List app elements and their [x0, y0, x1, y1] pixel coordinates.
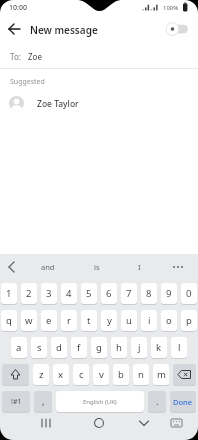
staticText: 8	[146, 287, 152, 300]
staticText: j	[138, 341, 141, 354]
staticText: d	[56, 341, 62, 354]
staticText: 10:00	[9, 3, 27, 13]
button[interactable]	[164, 254, 192, 280]
staticText: t	[87, 314, 91, 327]
staticText: x	[58, 368, 64, 381]
button[interactable]: ,	[34, 391, 52, 413]
button[interactable]: To:	[0, 44, 198, 68]
button[interactable]: l	[171, 337, 187, 359]
button[interactable]: 1	[1, 283, 17, 305]
button[interactable]: I	[121, 254, 157, 280]
staticText: a	[16, 341, 22, 354]
button[interactable]: 2	[21, 283, 37, 305]
staticText: Done	[173, 397, 193, 407]
button[interactable]: 8	[141, 283, 157, 305]
button[interactable]: p	[181, 310, 197, 332]
button[interactable]: x	[53, 364, 69, 386]
staticText: w	[25, 314, 33, 327]
button[interactable]	[173, 364, 196, 386]
staticText: 9	[166, 287, 172, 300]
button[interactable]: Zoe Taylor	[0, 93, 198, 114]
staticText: and	[41, 262, 55, 272]
button[interactable]: !#1	[2, 391, 30, 413]
staticText: n	[138, 368, 144, 381]
button[interactable]: 5	[81, 283, 97, 305]
button[interactable]	[2, 257, 22, 277]
button[interactable]	[4, 19, 24, 39]
button[interactable]: w	[21, 310, 37, 332]
button[interactable]: d	[51, 337, 67, 359]
button[interactable]	[36, 414, 56, 432]
button[interactable]: r	[61, 310, 77, 332]
staticText: To:	[10, 51, 21, 62]
staticText: f	[77, 341, 81, 354]
staticText: 6	[106, 287, 112, 300]
button[interactable]: 7	[121, 283, 137, 305]
button[interactable]: q	[1, 310, 17, 332]
staticText: k	[156, 341, 162, 354]
staticText: u	[126, 314, 132, 327]
button[interactable]: f	[71, 337, 87, 359]
button[interactable]: t	[81, 310, 97, 332]
staticText: l	[178, 341, 181, 354]
staticText: e	[46, 314, 52, 327]
staticText: Zoe	[28, 51, 42, 62]
staticText: English (UK)	[83, 398, 117, 406]
staticText: y	[107, 314, 112, 327]
button[interactable]: j	[131, 337, 147, 359]
staticText: ,	[42, 395, 45, 408]
staticText: 3	[46, 287, 52, 300]
button[interactable]: 4	[61, 283, 77, 305]
staticText: 2	[26, 287, 32, 300]
button[interactable]: 3	[41, 283, 57, 305]
staticText: p	[186, 314, 192, 327]
button[interactable]	[163, 21, 191, 37]
button[interactable]: y	[101, 310, 117, 332]
staticText: .	[156, 395, 159, 408]
button[interactable]: v	[93, 364, 109, 386]
button[interactable]: u	[121, 310, 137, 332]
staticText: 7	[126, 287, 132, 300]
button[interactable]: is	[79, 254, 115, 280]
button[interactable]: b	[113, 364, 129, 386]
button[interactable]: 6	[101, 283, 117, 305]
button[interactable]: a	[11, 337, 27, 359]
button[interactable]	[134, 414, 154, 432]
staticText: m	[157, 368, 166, 381]
button[interactable]: g	[91, 337, 107, 359]
button[interactable]: i	[141, 310, 157, 332]
staticText: New message	[30, 23, 98, 37]
button[interactable]: English (UK)	[56, 391, 144, 413]
staticText: b	[118, 368, 124, 381]
button[interactable]: k	[151, 337, 167, 359]
staticText: 4	[66, 287, 72, 300]
staticText: i	[148, 314, 151, 327]
button[interactable]: m	[153, 364, 169, 386]
button[interactable]: h	[111, 337, 127, 359]
staticText: I	[138, 262, 141, 272]
button[interactable]: n	[133, 364, 149, 386]
button[interactable]: o	[161, 310, 177, 332]
staticText: 0	[186, 287, 192, 300]
button[interactable]: .	[148, 391, 166, 413]
staticText: s	[37, 341, 42, 354]
staticText: Suggested	[10, 77, 45, 87]
button[interactable]: 0	[181, 283, 197, 305]
button[interactable]	[89, 414, 109, 432]
staticText: o	[166, 314, 172, 327]
button[interactable]: 9	[161, 283, 177, 305]
staticText: c	[79, 368, 84, 381]
button[interactable]: c	[73, 364, 89, 386]
button[interactable]: s	[31, 337, 47, 359]
button[interactable]	[2, 364, 29, 386]
button[interactable]: and	[30, 254, 66, 280]
button[interactable]: Done	[170, 391, 196, 413]
staticText: q	[6, 314, 12, 327]
staticText: 100%	[163, 4, 179, 12]
staticText: g	[96, 341, 102, 354]
staticText: !#1	[11, 397, 22, 407]
button[interactable]: e	[41, 310, 57, 332]
button[interactable]: z	[33, 364, 49, 386]
staticText: is	[94, 262, 100, 272]
button[interactable]	[168, 416, 186, 430]
